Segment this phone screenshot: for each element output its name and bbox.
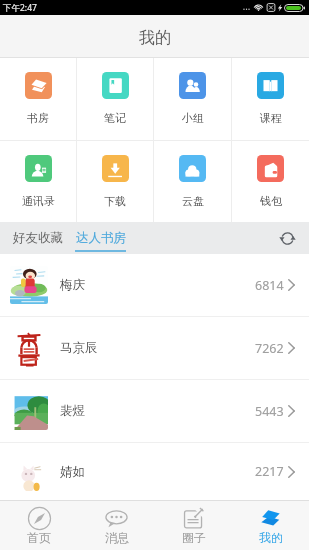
button[interactable]: 笔记: [77, 58, 153, 140]
button[interactable]: 裴煜: [0, 380, 309, 442]
staticText: 钱包: [260, 194, 282, 208]
staticText: 书房: [27, 111, 49, 125]
staticText: 笔记: [104, 111, 126, 125]
staticText: 马京辰: [60, 340, 98, 356]
staticText: 达人书房: [76, 230, 126, 246]
button[interactable]: 钱包: [232, 141, 309, 222]
staticText: 圈子: [182, 530, 206, 545]
button[interactable]: 课程: [232, 58, 309, 140]
staticText: 好友收藏: [13, 230, 63, 246]
button[interactable]: 圈子: [155, 501, 232, 550]
staticText: 我的: [139, 28, 171, 48]
button[interactable]: 书房: [0, 58, 76, 140]
staticText: 裴煜: [60, 403, 85, 419]
staticText: 通讯录: [22, 194, 55, 208]
button[interactable]: Refresh: [275, 226, 299, 250]
staticText: 下午2:47: [3, 2, 37, 14]
staticText: 下载: [104, 194, 126, 208]
button[interactable]: 云盘: [154, 141, 231, 222]
staticText: 5443: [255, 403, 284, 420]
button[interactable]: 消息: [78, 501, 155, 550]
button[interactable]: 马京辰: [0, 317, 309, 379]
button[interactable]: 好友收藏: [0, 222, 69, 254]
button[interactable]: 达人书房: [69, 222, 132, 254]
button[interactable]: 小组: [154, 58, 231, 140]
staticText: 云盘: [182, 194, 204, 208]
button[interactable]: 下载: [77, 141, 153, 222]
staticText: 我的: [259, 530, 283, 545]
button[interactable]: 婧如: [0, 443, 309, 500]
button[interactable]: 我的: [232, 501, 309, 550]
staticText: 2217: [255, 463, 284, 480]
staticText: 消息: [105, 530, 129, 545]
staticText: 6814: [255, 277, 284, 294]
button[interactable]: 通讯录: [0, 141, 76, 222]
staticText: 7262: [255, 340, 284, 357]
staticText: 小组: [182, 111, 204, 125]
button[interactable]: 首页: [0, 501, 78, 550]
staticText: 梅庆: [60, 277, 85, 293]
button[interactable]: 梅庆: [0, 254, 309, 316]
staticText: 首页: [27, 530, 51, 545]
staticText: 课程: [260, 111, 282, 125]
staticText: 婧如: [60, 464, 85, 480]
